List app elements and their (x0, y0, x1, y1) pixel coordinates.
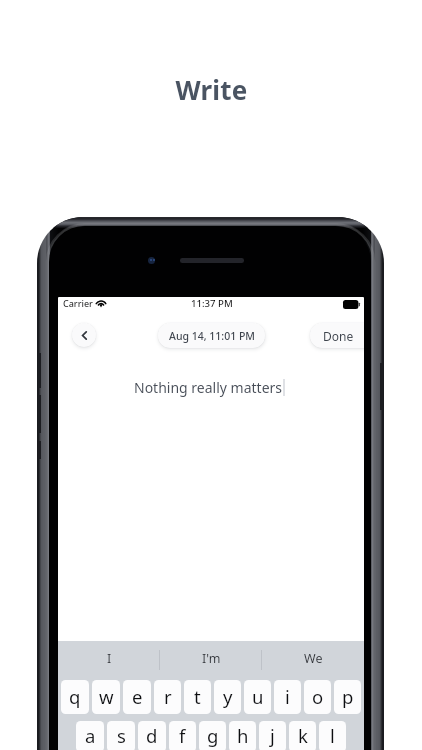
button[interactable]: Done (310, 323, 364, 348)
staticText: Write (175, 72, 248, 107)
button[interactable]: Aug 14, 11:01 PM (158, 323, 265, 348)
staticText: d (146, 723, 158, 748)
button[interactable]: e (123, 680, 151, 714)
staticText: We (304, 650, 323, 667)
button[interactable]: j (259, 721, 286, 750)
staticText: Done (323, 328, 354, 344)
button[interactable]: w (92, 680, 120, 714)
button[interactable]: I'm (160, 641, 262, 680)
staticText: r (164, 684, 172, 709)
staticText: g (207, 723, 219, 748)
staticText: o (312, 684, 324, 709)
staticText: Aug 14, 11:01 PM (169, 329, 255, 343)
staticText: h (237, 723, 249, 748)
staticText: a (85, 723, 96, 748)
button[interactable]: g (199, 721, 226, 750)
button[interactable]: q (61, 680, 89, 714)
staticText: p (342, 684, 354, 709)
button[interactable]: h (229, 721, 256, 750)
button[interactable]: We (262, 641, 364, 680)
button[interactable]: u (244, 680, 271, 714)
button[interactable]: I (58, 641, 160, 680)
staticText: Carrier (63, 297, 93, 309)
button[interactable]: d (138, 721, 166, 750)
staticText: i (285, 684, 290, 709)
staticText: j (270, 723, 275, 748)
button[interactable]: y (214, 680, 241, 714)
staticText: I (107, 650, 112, 667)
button[interactable]: s (107, 721, 135, 750)
button[interactable]: i (274, 680, 301, 714)
button[interactable]: Back (72, 323, 96, 347)
button[interactable]: f (169, 721, 196, 750)
staticText: I'm (202, 650, 221, 667)
button[interactable]: p (334, 680, 361, 714)
staticText: k (298, 723, 308, 748)
staticText: l (330, 723, 335, 748)
staticText: t (194, 684, 201, 709)
staticText: Nothing really matters. (134, 378, 286, 397)
staticText: u (252, 684, 264, 709)
staticText: f (179, 723, 186, 748)
button[interactable]: a (76, 721, 104, 750)
staticText: y (223, 684, 233, 709)
staticText: 11:37 PM (191, 297, 233, 310)
staticText: e (132, 684, 143, 709)
button[interactable]: k (289, 721, 316, 750)
button[interactable]: o (304, 680, 331, 714)
staticText: q (69, 684, 81, 709)
button[interactable]: l (319, 721, 346, 750)
button[interactable]: r (154, 680, 181, 714)
staticText: s (117, 723, 126, 748)
staticText: w (99, 684, 114, 709)
button[interactable]: t (184, 680, 211, 714)
